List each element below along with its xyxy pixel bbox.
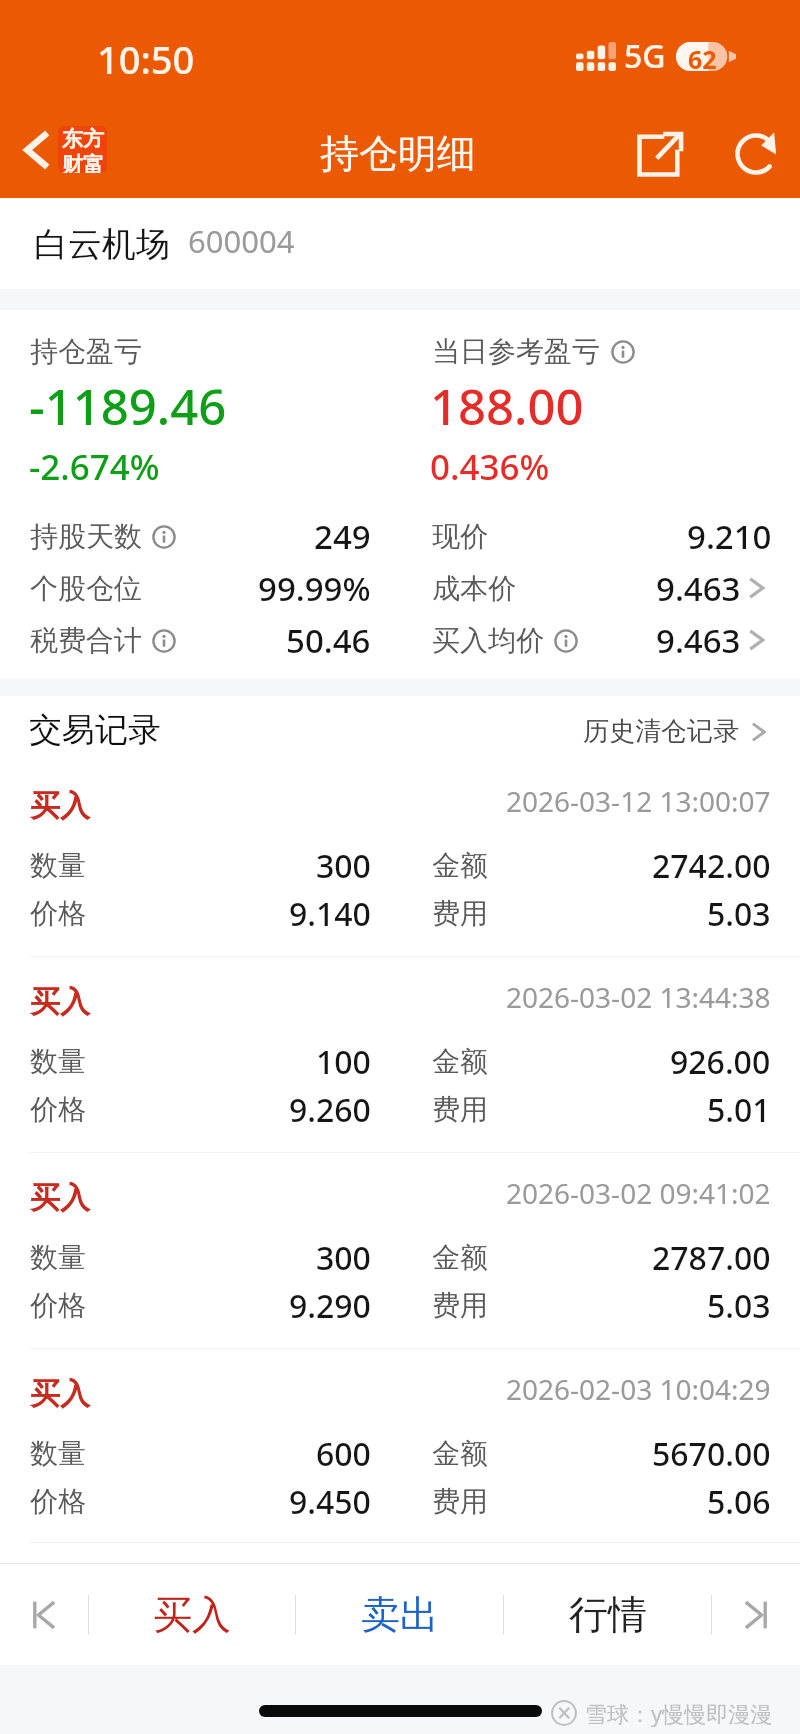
staticText: 188.00 bbox=[430, 373, 584, 440]
staticText: 现价 bbox=[432, 519, 488, 554]
staticText: 62 bbox=[688, 42, 717, 71]
staticText: 2026-03-12 13:00:07 bbox=[506, 782, 771, 820]
staticText: 白云机场 bbox=[34, 223, 170, 266]
button[interactable]: Refresh bbox=[724, 122, 788, 186]
staticText: 雪球：y慢慢即漫漫 bbox=[585, 1698, 773, 1728]
staticText: 5.06 bbox=[707, 1480, 771, 1520]
staticText: 买入 bbox=[30, 1375, 90, 1413]
staticText: 9.140 bbox=[289, 892, 371, 932]
staticText: 买入 bbox=[30, 787, 90, 825]
staticText: 100 bbox=[316, 1040, 371, 1080]
staticText: 买入 bbox=[30, 983, 90, 1021]
staticText: 价格 bbox=[30, 896, 86, 931]
staticText: 2026-03-02 09:41:02 bbox=[506, 1174, 771, 1212]
button[interactable]: Back bbox=[8, 126, 111, 173]
staticText: 300 bbox=[316, 844, 371, 884]
staticText: 600004 bbox=[188, 220, 295, 262]
staticText: 买入均价 bbox=[432, 623, 544, 658]
staticText: 9.290 bbox=[289, 1284, 371, 1324]
button[interactable]: 卖出 bbox=[296, 1564, 503, 1665]
staticText: 成本价 bbox=[432, 571, 516, 606]
staticText: 交易记录 bbox=[29, 709, 161, 751]
staticText: 数量 bbox=[30, 1240, 86, 1275]
staticText: 99.99% bbox=[258, 566, 371, 611]
button[interactable]: 买入 bbox=[0, 1348, 800, 1544]
button[interactable]: 买入 bbox=[0, 760, 800, 956]
staticText: 卖出 bbox=[361, 1590, 439, 1639]
staticText: 东方 bbox=[62, 126, 104, 152]
staticText: 10:50 bbox=[97, 33, 195, 85]
button[interactable]: First page bbox=[0, 1564, 88, 1665]
staticText: 金额 bbox=[432, 1240, 488, 1275]
staticText: 费用 bbox=[432, 1484, 488, 1519]
staticText: 价格 bbox=[30, 1484, 86, 1519]
staticText: 个股仓位 bbox=[30, 571, 142, 606]
staticText: 行情 bbox=[569, 1590, 647, 1639]
staticText: 数量 bbox=[30, 848, 86, 883]
staticText: 5.01 bbox=[707, 1088, 771, 1128]
staticText: 数量 bbox=[30, 1436, 86, 1471]
staticText: 持仓明细 bbox=[320, 129, 476, 178]
button[interactable]: 历史清仓记录 bbox=[583, 715, 770, 748]
staticText: 税费合计 bbox=[30, 623, 142, 658]
staticText: 2026-03-02 13:44:38 bbox=[506, 978, 771, 1016]
staticText: 9.463 bbox=[656, 566, 741, 611]
button[interactable]: Share bbox=[628, 122, 692, 186]
staticText: 249 bbox=[314, 514, 371, 559]
staticText: 2742.00 bbox=[652, 844, 771, 884]
staticText: 2787.00 bbox=[652, 1236, 771, 1276]
staticText: 费用 bbox=[432, 896, 488, 931]
staticText: 9.260 bbox=[289, 1088, 371, 1128]
staticText: 费用 bbox=[432, 1288, 488, 1323]
staticText: 数量 bbox=[30, 1044, 86, 1079]
staticText: 持仓盈亏 bbox=[30, 334, 142, 369]
staticText: 50.46 bbox=[286, 618, 371, 663]
staticText: 买入 bbox=[30, 1179, 90, 1217]
button[interactable]: 买入 bbox=[89, 1564, 295, 1665]
staticText: 9.450 bbox=[289, 1480, 371, 1520]
staticText: 5.03 bbox=[707, 1284, 771, 1324]
staticText: 价格 bbox=[30, 1288, 86, 1323]
staticText: 2026-02-03 10:04:29 bbox=[506, 1370, 771, 1408]
staticText: 9.463 bbox=[656, 618, 741, 663]
staticText: 926.00 bbox=[670, 1040, 771, 1080]
staticText: 5670.00 bbox=[652, 1432, 771, 1472]
button[interactable]: 行情 bbox=[504, 1564, 711, 1665]
staticText: 财富 bbox=[62, 152, 104, 173]
staticText: 费用 bbox=[432, 1092, 488, 1127]
staticText: -2.674% bbox=[29, 443, 160, 491]
staticText: -1189.46 bbox=[29, 373, 227, 440]
staticText: 金额 bbox=[432, 1044, 488, 1079]
staticText: 5.03 bbox=[707, 892, 771, 932]
button[interactable]: Last page bbox=[712, 1564, 800, 1665]
staticText: 0.436% bbox=[430, 443, 550, 491]
staticText: 持股天数 bbox=[30, 519, 142, 554]
staticText: 9.210 bbox=[687, 514, 772, 559]
staticText: 600 bbox=[316, 1432, 371, 1472]
button[interactable]: 买入 bbox=[0, 956, 800, 1152]
staticText: 5G bbox=[624, 34, 666, 78]
staticText: 金额 bbox=[432, 848, 488, 883]
button[interactable]: 买入 bbox=[0, 1152, 800, 1348]
staticText: 买入 bbox=[153, 1590, 231, 1639]
staticText: 价格 bbox=[30, 1092, 86, 1127]
staticText: 历史清仓记录 bbox=[583, 715, 739, 748]
staticText: 300 bbox=[316, 1236, 371, 1276]
staticText: 当日参考盈亏 bbox=[432, 334, 600, 369]
staticText: 金额 bbox=[432, 1436, 488, 1471]
